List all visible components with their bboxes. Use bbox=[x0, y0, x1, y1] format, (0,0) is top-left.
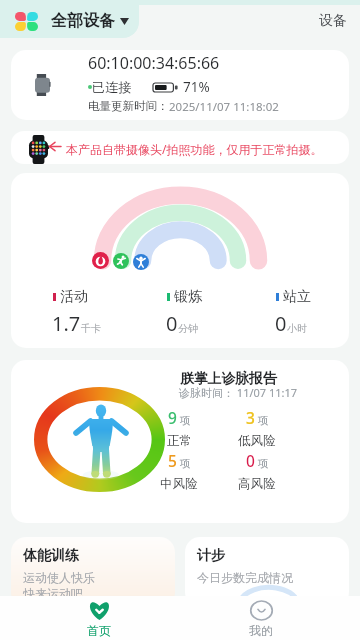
other: 摄像头提示 bbox=[48, 141, 61, 152]
staticText: 活动 bbox=[60, 288, 88, 306]
staticText: 9 bbox=[168, 407, 177, 428]
staticText: 朕掌上诊脉报告 bbox=[180, 370, 277, 387]
staticText: 0 bbox=[275, 310, 287, 337]
staticText: 项 bbox=[180, 414, 191, 427]
staticText: 已连接 bbox=[92, 79, 132, 96]
staticText: 项 bbox=[258, 457, 269, 470]
button[interactable]: 全部设备 bbox=[15, 4, 129, 38]
staticText: 项 bbox=[180, 457, 191, 470]
button[interactable]: 设备 bbox=[309, 6, 360, 36]
staticText: 计步 bbox=[197, 547, 225, 565]
staticText: 锻炼 bbox=[174, 288, 202, 306]
staticText: 小时 bbox=[287, 322, 307, 335]
staticText: 0 bbox=[166, 310, 178, 337]
staticText: 71% bbox=[183, 78, 210, 96]
staticText: 运动使人快乐 bbox=[23, 570, 95, 585]
staticText: 分钟 bbox=[178, 322, 198, 335]
staticText: 设备 bbox=[319, 12, 347, 30]
staticText: 0 bbox=[246, 450, 255, 471]
staticText: 诊脉时间： 11/07 11:17 bbox=[179, 385, 298, 400]
staticText: 本产品自带摄像头/拍照功能，仅用于正常拍摄。 bbox=[66, 141, 323, 157]
button[interactable]: 我的 bbox=[180, 598, 342, 638]
button[interactable]: 锻炼 bbox=[113, 253, 129, 269]
staticText: 中风险 bbox=[160, 476, 198, 492]
staticText: 站立 bbox=[283, 288, 311, 306]
button[interactable]: 站立 bbox=[133, 254, 149, 270]
staticText: 今日步数完成情况 bbox=[197, 570, 293, 585]
button[interactable]: 计步 bbox=[185, 537, 349, 607]
button[interactable]: 首页 bbox=[18, 598, 180, 638]
button[interactable]: 体能训练 bbox=[11, 537, 175, 607]
staticText: 项 bbox=[258, 414, 269, 427]
staticText: 3 bbox=[246, 407, 255, 428]
staticText: 千卡 bbox=[81, 322, 101, 335]
staticText: 5 bbox=[168, 450, 177, 471]
button[interactable]: 朕掌上诊脉报告 bbox=[11, 360, 349, 523]
staticText: 2025/11/07 11:18:02 bbox=[169, 99, 279, 115]
staticText: 低风险 bbox=[238, 433, 276, 449]
staticText: 全部设备 bbox=[51, 11, 115, 31]
button[interactable]: 60:10:00:34:65:66 bbox=[11, 50, 349, 120]
staticText: 体能训练 bbox=[23, 547, 79, 565]
staticText: 电量更新时间： bbox=[88, 99, 169, 113]
staticText: 正常 bbox=[167, 433, 192, 449]
staticText: 1.7 bbox=[52, 310, 81, 337]
staticText: 高风险 bbox=[238, 476, 276, 492]
staticText: 60:10:00:34:65:66 bbox=[88, 52, 220, 74]
staticText: 快来运动吧 bbox=[23, 586, 83, 601]
button[interactable]: 摄像头提示 bbox=[11, 131, 349, 164]
staticText: 首页 bbox=[87, 623, 111, 638]
staticText: 我的 bbox=[249, 623, 273, 638]
button[interactable]: 活动 bbox=[92, 252, 109, 269]
